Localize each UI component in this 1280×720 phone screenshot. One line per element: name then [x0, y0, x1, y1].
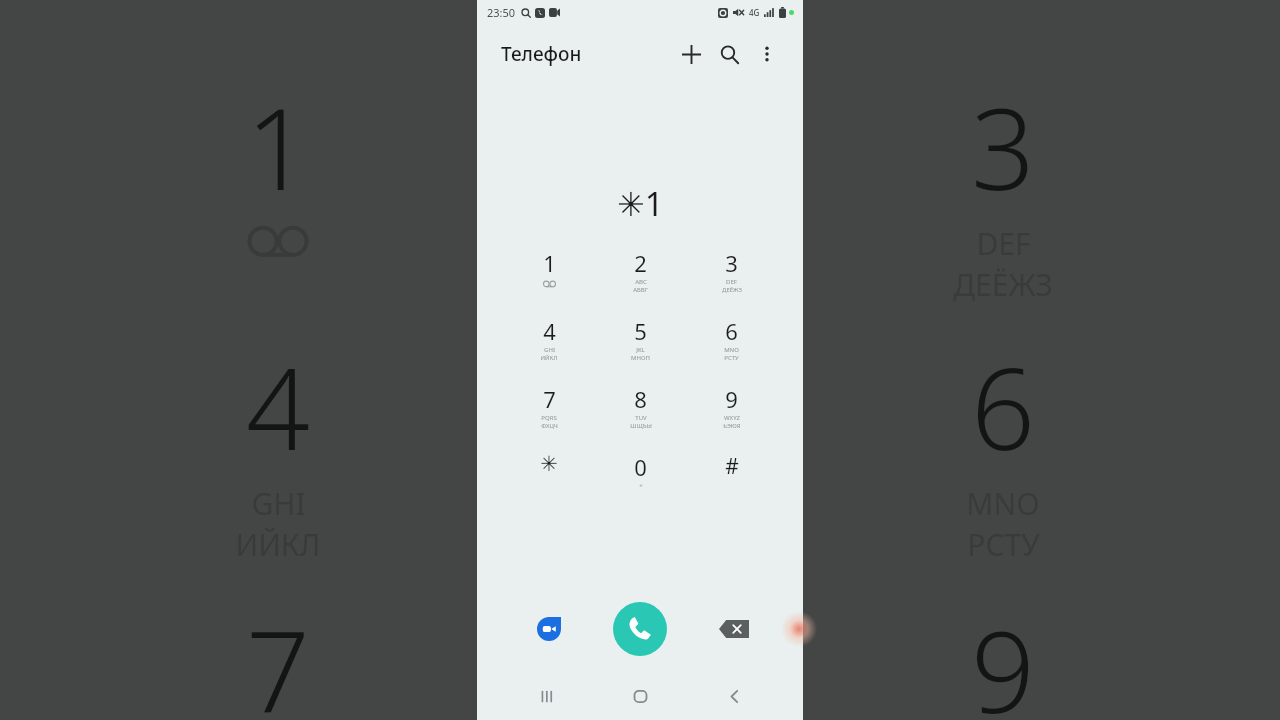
staticText: 5 — [634, 316, 647, 346]
button[interactable]: Video call — [527, 607, 571, 651]
staticText: 3 — [725, 248, 738, 278]
button[interactable]: 1 — [503, 248, 595, 302]
button[interactable]: 9 — [686, 384, 777, 438]
staticText: 1 — [543, 248, 556, 278]
button[interactable]: More options — [749, 36, 785, 72]
staticText: Телефон — [501, 41, 582, 67]
staticText: MNO — [966, 483, 1040, 524]
staticText: DEF — [726, 278, 737, 286]
staticText: TUV — [635, 414, 647, 422]
staticText: WXYZ — [724, 414, 740, 422]
button[interactable]: ✳ — [503, 452, 595, 506]
staticText: 6 — [725, 316, 738, 346]
button[interactable]: 2 — [595, 248, 686, 302]
staticText: ИЙКЛ — [540, 354, 558, 362]
staticText: 4 — [246, 330, 310, 483]
staticText: 4 — [543, 316, 556, 346]
staticText: 6 — [971, 330, 1035, 483]
button[interactable]: 7 — [503, 384, 595, 438]
staticText: # — [725, 452, 739, 481]
staticText: ABC — [635, 278, 647, 286]
staticText: ✳ — [540, 452, 558, 476]
staticText: PQRS — [541, 414, 557, 422]
staticText: MNO — [724, 346, 739, 354]
button[interactable]: Add contact — [673, 36, 709, 72]
button[interactable]: Call — [613, 602, 667, 656]
staticText: 7 — [246, 593, 310, 720]
staticText: РСТУ — [724, 354, 739, 362]
button[interactable]: 6 — [686, 316, 777, 370]
staticText: JKL — [636, 346, 645, 354]
button[interactable]: 0 — [595, 452, 686, 506]
staticText: 0 — [634, 452, 647, 482]
button[interactable]: Backspace — [711, 611, 757, 647]
staticText: ШЩЪЫ — [630, 422, 652, 430]
staticText: 9 — [725, 384, 738, 414]
button[interactable]: 3 — [686, 248, 777, 302]
staticText: 3 — [971, 70, 1035, 223]
staticText: 9 — [971, 593, 1035, 720]
button[interactable]: Search — [711, 36, 747, 72]
button[interactable]: Back — [710, 672, 758, 720]
staticText: + — [639, 482, 643, 490]
staticText: 1 — [246, 70, 310, 223]
staticText: ФХЦЧ — [541, 422, 558, 430]
button[interactable]: Recent apps — [523, 672, 571, 720]
button[interactable]: Home — [616, 672, 664, 720]
staticText: ✳1 — [617, 181, 664, 226]
staticText: 7 — [543, 384, 556, 414]
staticText: РСТУ — [967, 524, 1040, 565]
button[interactable]: 8 — [595, 384, 686, 438]
staticText: 2 — [634, 248, 647, 278]
staticText: ДЕЁЖЗ — [722, 286, 742, 294]
staticText: МНОП — [631, 354, 650, 362]
staticText: ЬЭЮЯ — [723, 422, 741, 430]
button[interactable]: 5 — [595, 316, 686, 370]
staticText: DEF — [976, 223, 1031, 264]
button[interactable]: 4 — [503, 316, 595, 370]
staticText: ДЕЁЖЗ — [953, 264, 1053, 305]
staticText: 23:50 — [487, 5, 516, 20]
staticText: 4G — [749, 7, 760, 18]
staticText: АБВГ — [633, 286, 648, 294]
staticText: ИЙКЛ — [235, 524, 321, 565]
staticText: 8 — [634, 384, 647, 414]
button[interactable]: # — [686, 452, 777, 506]
staticText: GHI — [544, 346, 555, 354]
staticText: GHI — [251, 483, 306, 524]
